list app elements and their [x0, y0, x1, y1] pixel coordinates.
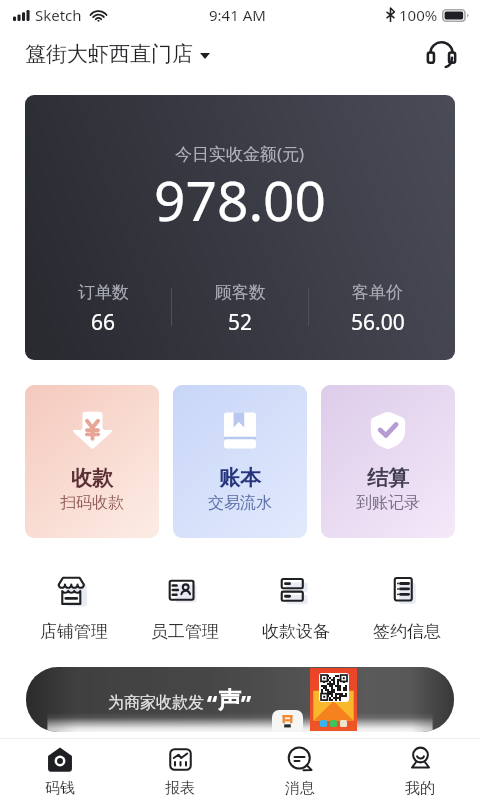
- staticText: 56.00: [351, 308, 405, 337]
- staticText: 52: [228, 308, 253, 337]
- staticText: 签约信息: [373, 621, 441, 642]
- staticText: 我的: [405, 779, 435, 798]
- staticText: ”: [241, 688, 252, 719]
- staticText: 员工管理: [151, 621, 219, 642]
- button[interactable]: 结算: [321, 385, 455, 538]
- staticText: 收款设备: [262, 621, 330, 642]
- staticText: 声: [218, 686, 241, 715]
- staticText: 今日实收金额(元): [175, 142, 305, 165]
- button[interactable]: 收款设备: [240, 576, 351, 642]
- button[interactable]: 账本: [173, 385, 307, 538]
- button[interactable]: 码钱: [0, 739, 120, 800]
- staticText: 码钱: [45, 779, 75, 798]
- button[interactable]: 我的: [360, 739, 480, 800]
- button[interactable]: 签约信息: [351, 576, 462, 642]
- staticText: 100%: [399, 5, 438, 25]
- staticText: 订单数: [78, 282, 129, 303]
- staticText: 簋街大虾西直门店: [25, 41, 193, 67]
- button[interactable]: 为商家收款发: [26, 667, 454, 732]
- staticText: 账本: [219, 465, 261, 491]
- button[interactable]: 店铺管理: [18, 576, 129, 642]
- button[interactable]: 消息: [240, 739, 360, 800]
- staticText: 扫码收款: [60, 493, 124, 513]
- staticText: 978.00: [154, 162, 327, 237]
- staticText: 到账记录: [356, 493, 420, 513]
- button[interactable]: 今日实收金额(元): [25, 95, 455, 360]
- staticText: 顾客数: [215, 282, 266, 303]
- staticText: 66: [91, 308, 116, 337]
- staticText: 为商家收款发: [108, 693, 204, 713]
- staticText: 消息: [285, 779, 315, 798]
- staticText: 报表: [165, 779, 195, 798]
- staticText: 收款: [71, 465, 113, 491]
- button[interactable]: Customer service: [421, 34, 461, 74]
- button[interactable]: 报表: [120, 739, 240, 800]
- staticText: 交易流水: [208, 493, 272, 513]
- staticText: 店铺管理: [40, 621, 108, 642]
- button[interactable]: 簋街大虾西直门店: [25, 41, 210, 67]
- staticText: 客单价: [352, 282, 403, 303]
- button[interactable]: 收款: [25, 385, 159, 538]
- button[interactable]: 员工管理: [129, 576, 240, 642]
- staticText: Sketch: [35, 5, 82, 25]
- staticText: “: [207, 688, 218, 719]
- staticText: 结算: [367, 465, 409, 491]
- staticText: 9:41 AM: [209, 5, 266, 25]
